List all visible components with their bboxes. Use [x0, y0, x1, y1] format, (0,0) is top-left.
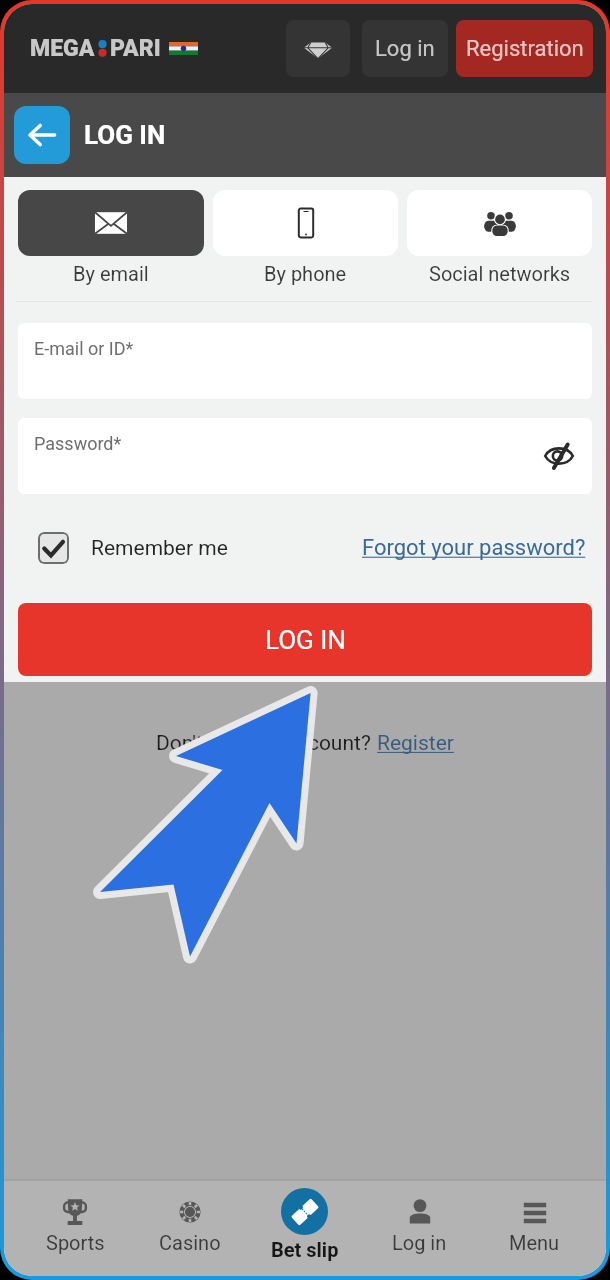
staticText: LOG IN	[84, 120, 166, 150]
staticText: Log in	[375, 36, 435, 62]
button[interactable]: Remember me	[38, 532, 228, 564]
button[interactable]: By phone	[213, 190, 398, 285]
button[interactable]: Social networks	[407, 190, 592, 285]
button[interactable]: Menu	[477, 1200, 592, 1258]
button[interactable]: Log in	[362, 20, 448, 77]
button[interactable]: Log in	[362, 1200, 477, 1258]
button[interactable]: Sports	[18, 1200, 132, 1258]
button[interactable]: E-mail or ID*	[18, 323, 592, 399]
staticText: Bet slip	[271, 1238, 339, 1261]
button[interactable]: Registration	[456, 20, 593, 77]
button[interactable]: Back	[14, 106, 70, 164]
button[interactable]: Show password	[526, 423, 592, 489]
staticText: LOG IN	[265, 625, 346, 655]
button[interactable]: Bonuses	[286, 20, 350, 77]
staticText: By phone	[264, 262, 347, 285]
staticText: Sports	[46, 1231, 105, 1254]
button[interactable]: By email	[18, 190, 204, 285]
staticText: Social networks	[429, 262, 571, 285]
button[interactable]: Register	[377, 731, 454, 756]
staticText: Don't have an account?	[156, 731, 377, 756]
staticText: E-mail or ID*	[34, 338, 134, 359]
button[interactable]: Bet slip	[247, 1192, 362, 1265]
staticText: Remember me	[91, 536, 228, 561]
staticText: Log in	[392, 1231, 447, 1254]
staticText: Menu	[509, 1231, 560, 1254]
staticText: PARI	[110, 35, 161, 62]
staticText: MEGA	[30, 35, 95, 62]
button[interactable]: LOG IN	[18, 603, 592, 676]
staticText: Casino	[159, 1231, 221, 1254]
button[interactable]: Casino	[132, 1200, 247, 1258]
button[interactable]: Password*	[18, 418, 592, 494]
staticText: Registration	[466, 36, 584, 62]
button[interactable]: Forgot your password?	[362, 535, 586, 561]
staticText: Password*	[34, 433, 122, 454]
staticText: By email	[73, 262, 149, 285]
